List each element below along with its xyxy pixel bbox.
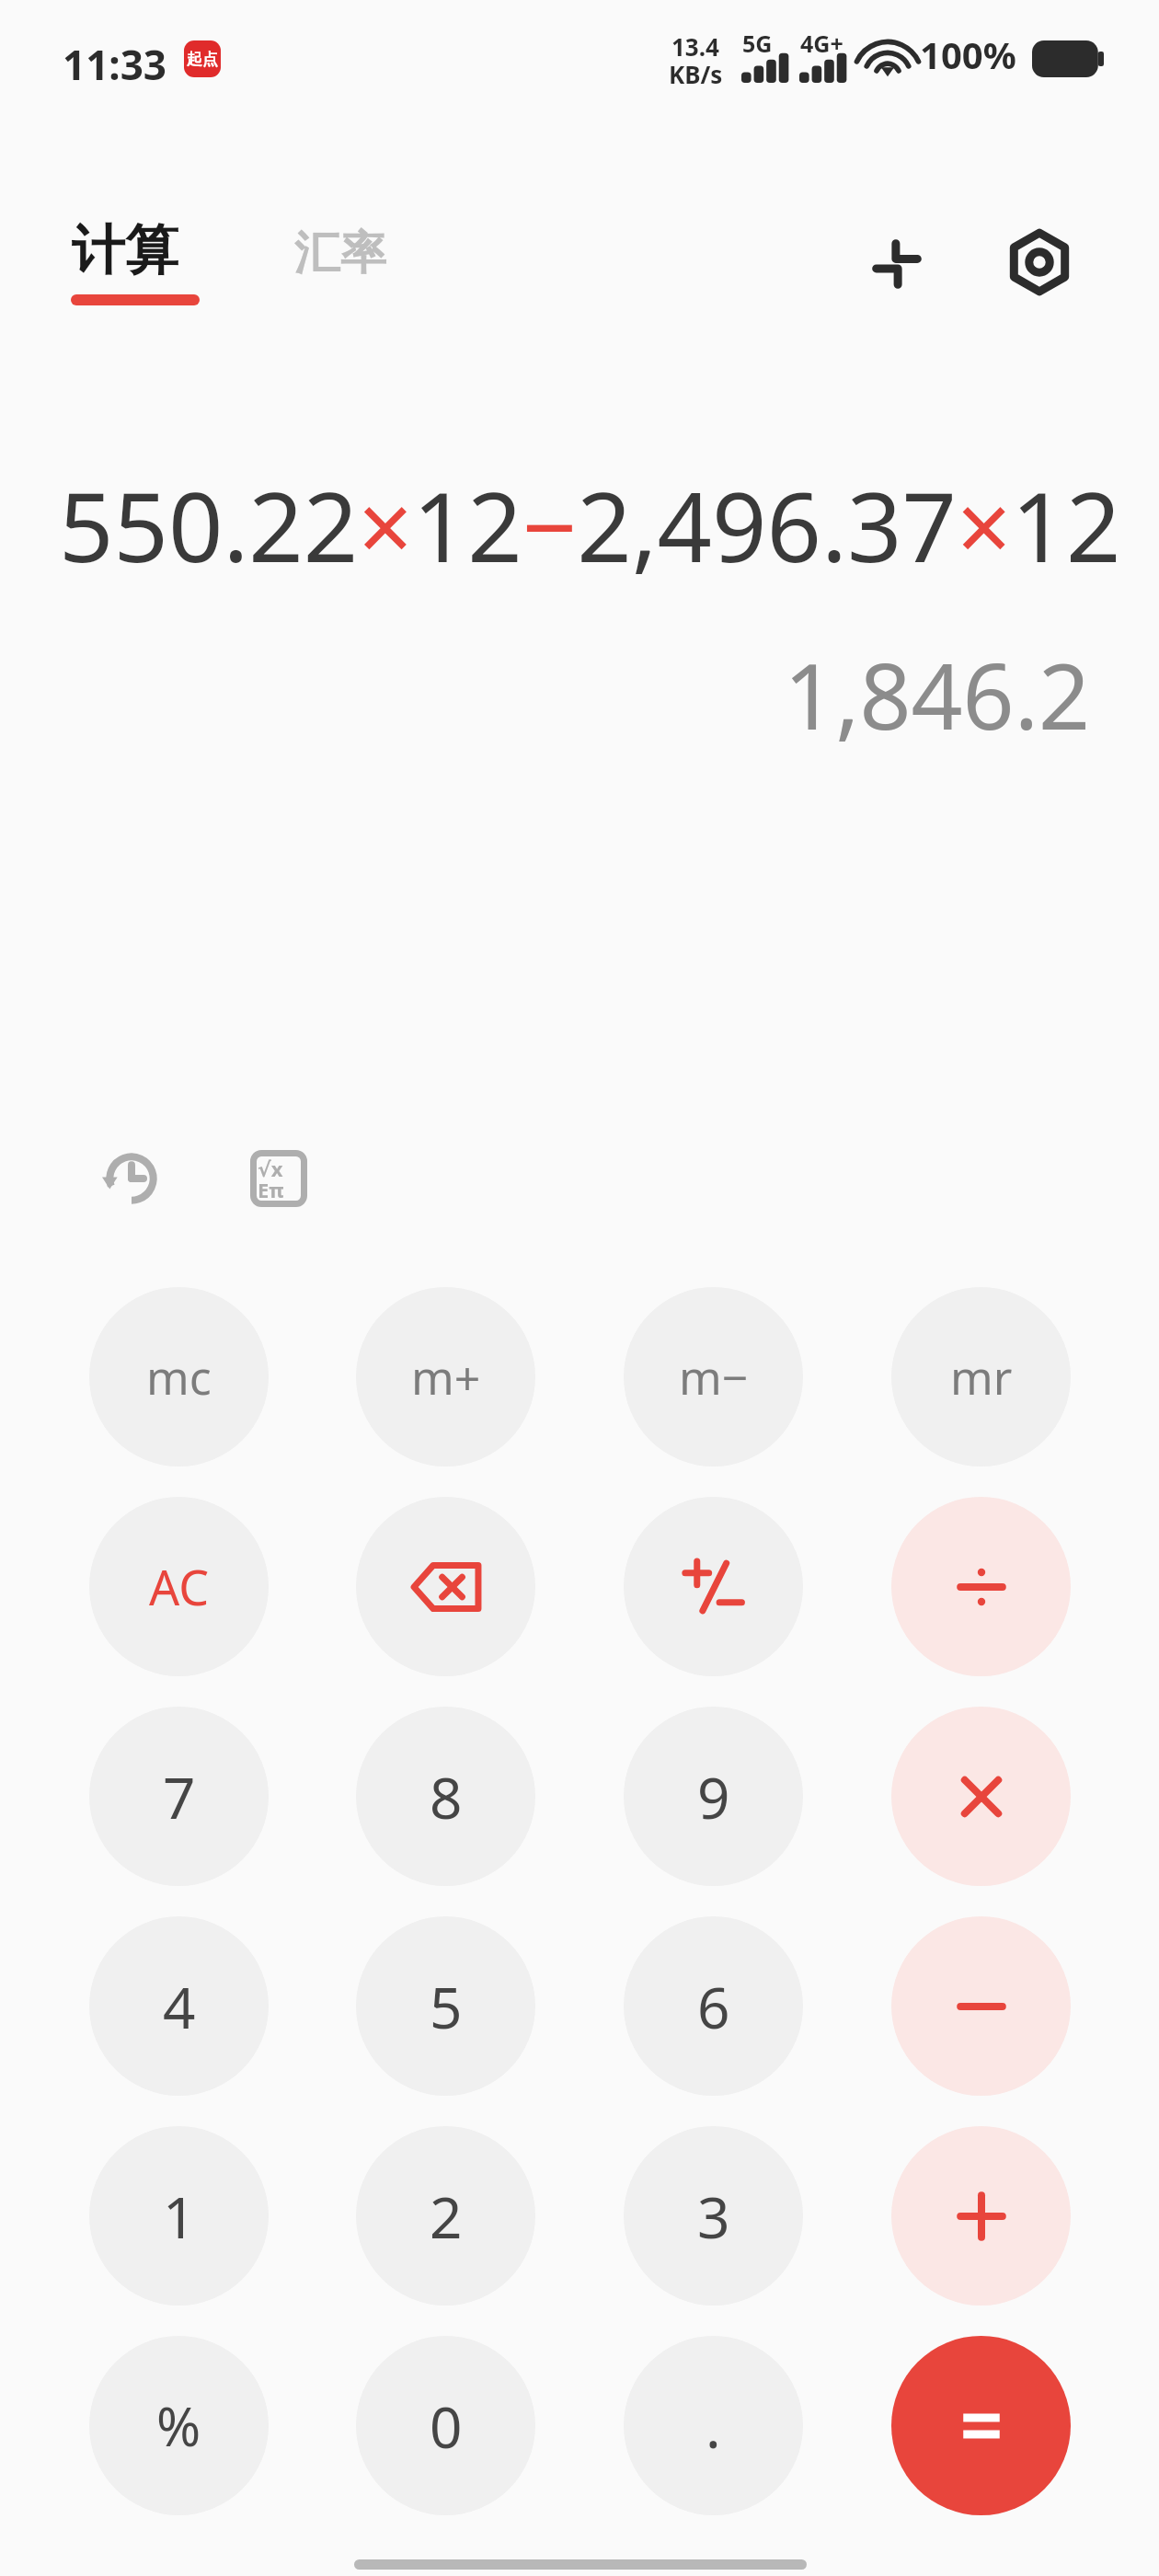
- button[interactable]: 4: [89, 1916, 269, 2096]
- staticText: √x: [258, 1155, 283, 1182]
- button[interactable]: .: [624, 2336, 803, 2515]
- button[interactable]: Minus: [891, 1916, 1071, 2096]
- staticText: 7: [163, 1758, 196, 1835]
- button[interactable]: %: [89, 2336, 269, 2515]
- staticText: Eπ: [258, 1176, 284, 1203]
- button[interactable]: AC: [89, 1497, 269, 1676]
- button[interactable]: Delete: [356, 1497, 535, 1676]
- button[interactable]: 3: [624, 2126, 803, 2306]
- staticText: 4G+: [800, 28, 843, 59]
- staticText: 5: [430, 1968, 463, 2045]
- staticText: 计算: [72, 217, 178, 284]
- staticText: 13.4: [671, 30, 719, 63]
- button[interactable]: 计算: [55, 212, 212, 322]
- staticText: 2: [430, 2178, 463, 2255]
- button[interactable]: 0: [356, 2336, 535, 2515]
- button[interactable]: Multiply: [891, 1707, 1071, 1886]
- button[interactable]: Divide: [891, 1497, 1071, 1676]
- staticText: 8: [430, 1758, 463, 1835]
- staticText: 11:33: [63, 37, 167, 92]
- button[interactable]: 6: [624, 1916, 803, 2096]
- staticText: mr: [950, 1346, 1013, 1409]
- staticText: 0: [430, 2387, 463, 2465]
- staticText: mc: [146, 1346, 212, 1409]
- staticText: %: [156, 2389, 201, 2462]
- staticText: 起点: [187, 50, 218, 69]
- staticText: 汇率: [294, 224, 386, 282]
- staticText: 6: [697, 1968, 730, 2045]
- button[interactable]: Settings: [989, 212, 1090, 313]
- button[interactable]: 8: [356, 1707, 535, 1886]
- staticText: 1: [163, 2178, 196, 2255]
- staticText: 3: [697, 2178, 730, 2255]
- staticText: 100%: [920, 29, 1016, 79]
- staticText: 550.22×12−2,496.37×12: [59, 460, 1121, 580]
- staticText: m+: [411, 1346, 481, 1409]
- button[interactable]: 1: [89, 2126, 269, 2306]
- staticText: .: [706, 2387, 721, 2465]
- button[interactable]: m+: [356, 1287, 535, 1466]
- button[interactable]: 9: [624, 1707, 803, 1886]
- button[interactable]: Plus: [891, 2126, 1071, 2306]
- staticText: 4: [163, 1968, 196, 2045]
- button[interactable]: mc: [89, 1287, 269, 1466]
- staticText: 5G: [742, 28, 773, 59]
- button[interactable]: Collapse: [846, 213, 947, 315]
- button[interactable]: 汇率: [276, 212, 432, 313]
- staticText: KB/s: [669, 58, 723, 90]
- button[interactable]: Scientific functions: [230, 1130, 327, 1226]
- button[interactable]: History: [83, 1130, 179, 1226]
- button[interactable]: mr: [891, 1287, 1071, 1466]
- button[interactable]: Toggle sign: [624, 1497, 803, 1676]
- staticText: m−: [679, 1346, 749, 1409]
- button[interactable]: m−: [624, 1287, 803, 1466]
- staticText: AC: [149, 1554, 210, 1619]
- button[interactable]: 7: [89, 1707, 269, 1886]
- staticText: 1,846.2: [0, 633, 1090, 743]
- button[interactable]: 2: [356, 2126, 535, 2306]
- button[interactable]: Equals: [891, 2336, 1071, 2515]
- staticText: 9: [697, 1758, 730, 1835]
- button[interactable]: 5: [356, 1916, 535, 2096]
